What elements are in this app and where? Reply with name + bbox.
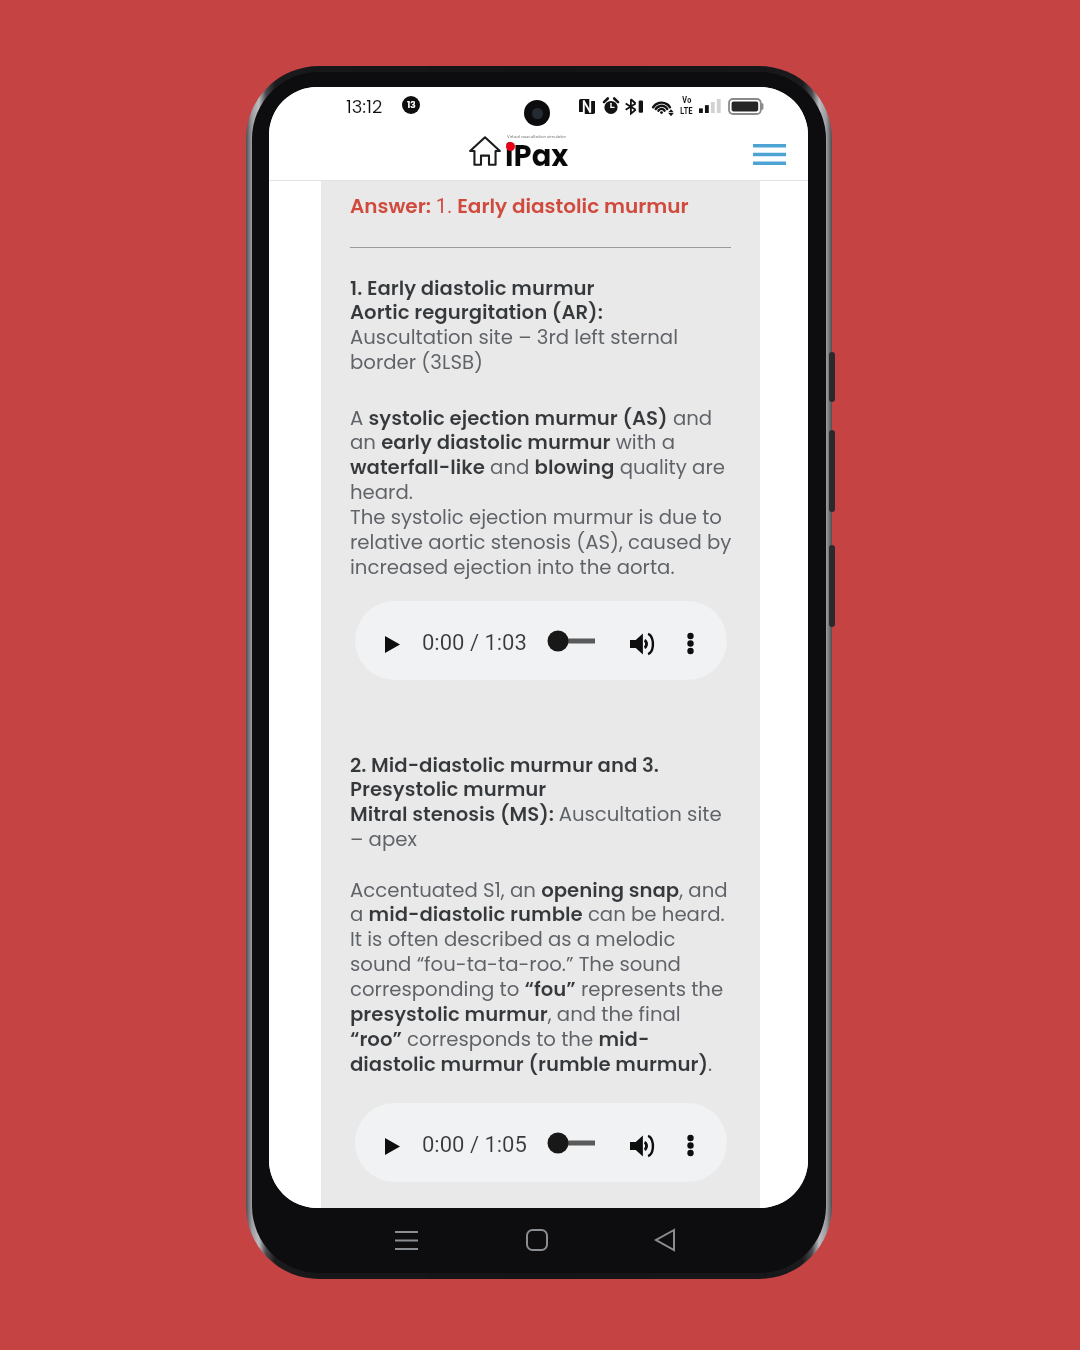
staticText: 13:12 bbox=[346, 94, 383, 119]
button[interactable]: Back bbox=[632, 1215, 698, 1265]
staticText: Virtual auscultation simulator bbox=[507, 134, 567, 140]
staticText: Answer: 1. Early diastolic murmur bbox=[350, 192, 689, 220]
button[interactable]: Play bbox=[374, 1132, 411, 1160]
staticText: 2. Mid-diastolic murmur and 3. Presystol… bbox=[350, 751, 722, 853]
staticText: 13 bbox=[407, 99, 416, 112]
staticText: 0:00 / 1:05 bbox=[422, 1132, 527, 1158]
staticText: iPax bbox=[505, 136, 569, 177]
button[interactable]: Recent apps bbox=[373, 1215, 439, 1265]
button[interactable]: Play bbox=[355, 1103, 727, 1182]
staticText: Accentuated S1, an opening snap, and a m… bbox=[350, 876, 728, 1078]
button[interactable]: Mute bbox=[624, 1131, 658, 1161]
staticText: LTE bbox=[680, 106, 693, 117]
staticText: 0:00 / 1:03 bbox=[422, 630, 527, 656]
staticText: Vo bbox=[682, 95, 692, 106]
button[interactable]: Mute bbox=[624, 629, 658, 659]
button[interactable]: Home bbox=[504, 1215, 570, 1265]
button[interactable]: More options bbox=[677, 1130, 703, 1160]
button[interactable]: Play bbox=[355, 601, 727, 680]
staticText: A systolic ejection murmur (AS) and an e… bbox=[350, 404, 732, 581]
button[interactable]: Open menu bbox=[744, 132, 794, 176]
button[interactable]: More options bbox=[677, 628, 703, 658]
button[interactable]: Play bbox=[374, 630, 411, 658]
staticText: 1. Early diastolic murmur Aortic regurgi… bbox=[350, 274, 679, 376]
